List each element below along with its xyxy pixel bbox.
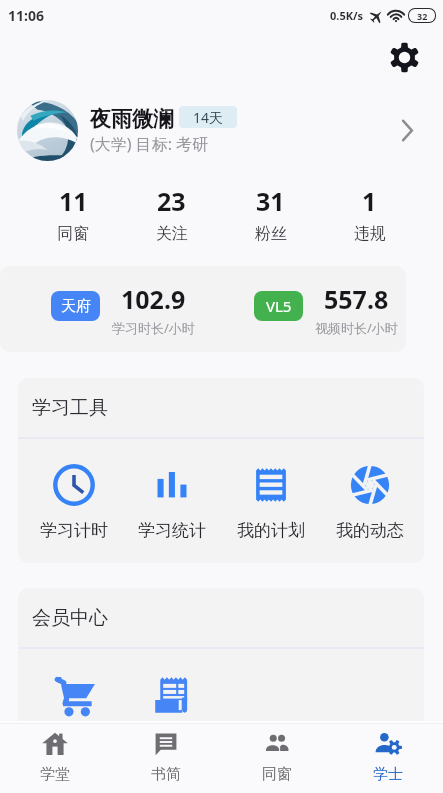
staticText: 购物车: [49, 730, 100, 751]
button[interactable]: VL5: [221, 282, 406, 337]
button[interactable]: 1: [320, 184, 419, 244]
button[interactable]: 11: [24, 184, 122, 244]
staticText: 我的计划: [237, 520, 305, 541]
button[interactable]: 我的计划: [221, 439, 320, 563]
staticText: 23: [157, 184, 186, 218]
button[interactable]: 书简: [110, 724, 221, 793]
button[interactable]: 我的动态: [320, 439, 419, 563]
button[interactable]: 天府: [18, 282, 221, 337]
staticText: 14天: [193, 108, 224, 127]
staticText: 1: [362, 184, 377, 218]
button[interactable]: 23: [122, 184, 221, 244]
staticText: 我的动态: [336, 520, 404, 541]
staticText: 学堂: [40, 765, 70, 784]
staticText: 夜雨微澜: [90, 106, 174, 132]
staticText: 关注: [156, 224, 188, 244]
staticText: 天府: [61, 297, 91, 316]
staticText: 学习时长/小时: [112, 319, 195, 337]
staticText: 书简: [151, 765, 181, 784]
staticText: 学习计时: [40, 520, 108, 541]
staticText: 违规: [354, 224, 386, 244]
staticText: 同窗: [57, 224, 89, 244]
staticText: (大学) 目标: 考研: [90, 133, 209, 155]
button[interactable]: 学士: [332, 724, 443, 793]
staticText: 视频时长/小时: [315, 319, 398, 337]
staticText: 11: [59, 184, 88, 218]
button[interactable]: 同窗: [221, 724, 332, 793]
staticText: 557.8: [324, 282, 389, 316]
button[interactable]: Settings: [383, 36, 425, 78]
button[interactable]: 学习计时: [25, 439, 123, 563]
button[interactable]: 账单: [123, 649, 221, 775]
staticText: 学习工具: [32, 396, 108, 420]
staticText: 32: [417, 10, 428, 22]
button[interactable]: 夜雨微澜: [0, 94, 443, 166]
staticText: 学士: [373, 765, 403, 784]
staticText: 11:06: [8, 6, 44, 25]
staticText: 同窗: [262, 765, 292, 784]
button[interactable]: 学堂: [0, 724, 110, 793]
staticText: 学习统计: [138, 520, 206, 541]
staticText: 粉丝: [255, 224, 287, 244]
button[interactable]: 31: [221, 184, 320, 244]
staticText: 102.9: [121, 282, 186, 316]
staticText: 31: [256, 184, 285, 218]
staticText: 账单: [155, 730, 189, 751]
button[interactable]: 购物车: [25, 649, 123, 775]
staticText: 会员中心: [32, 606, 108, 630]
staticText: VL5: [266, 296, 292, 316]
staticText: 0.5K/s: [330, 8, 364, 23]
button[interactable]: 学习统计: [123, 439, 221, 563]
